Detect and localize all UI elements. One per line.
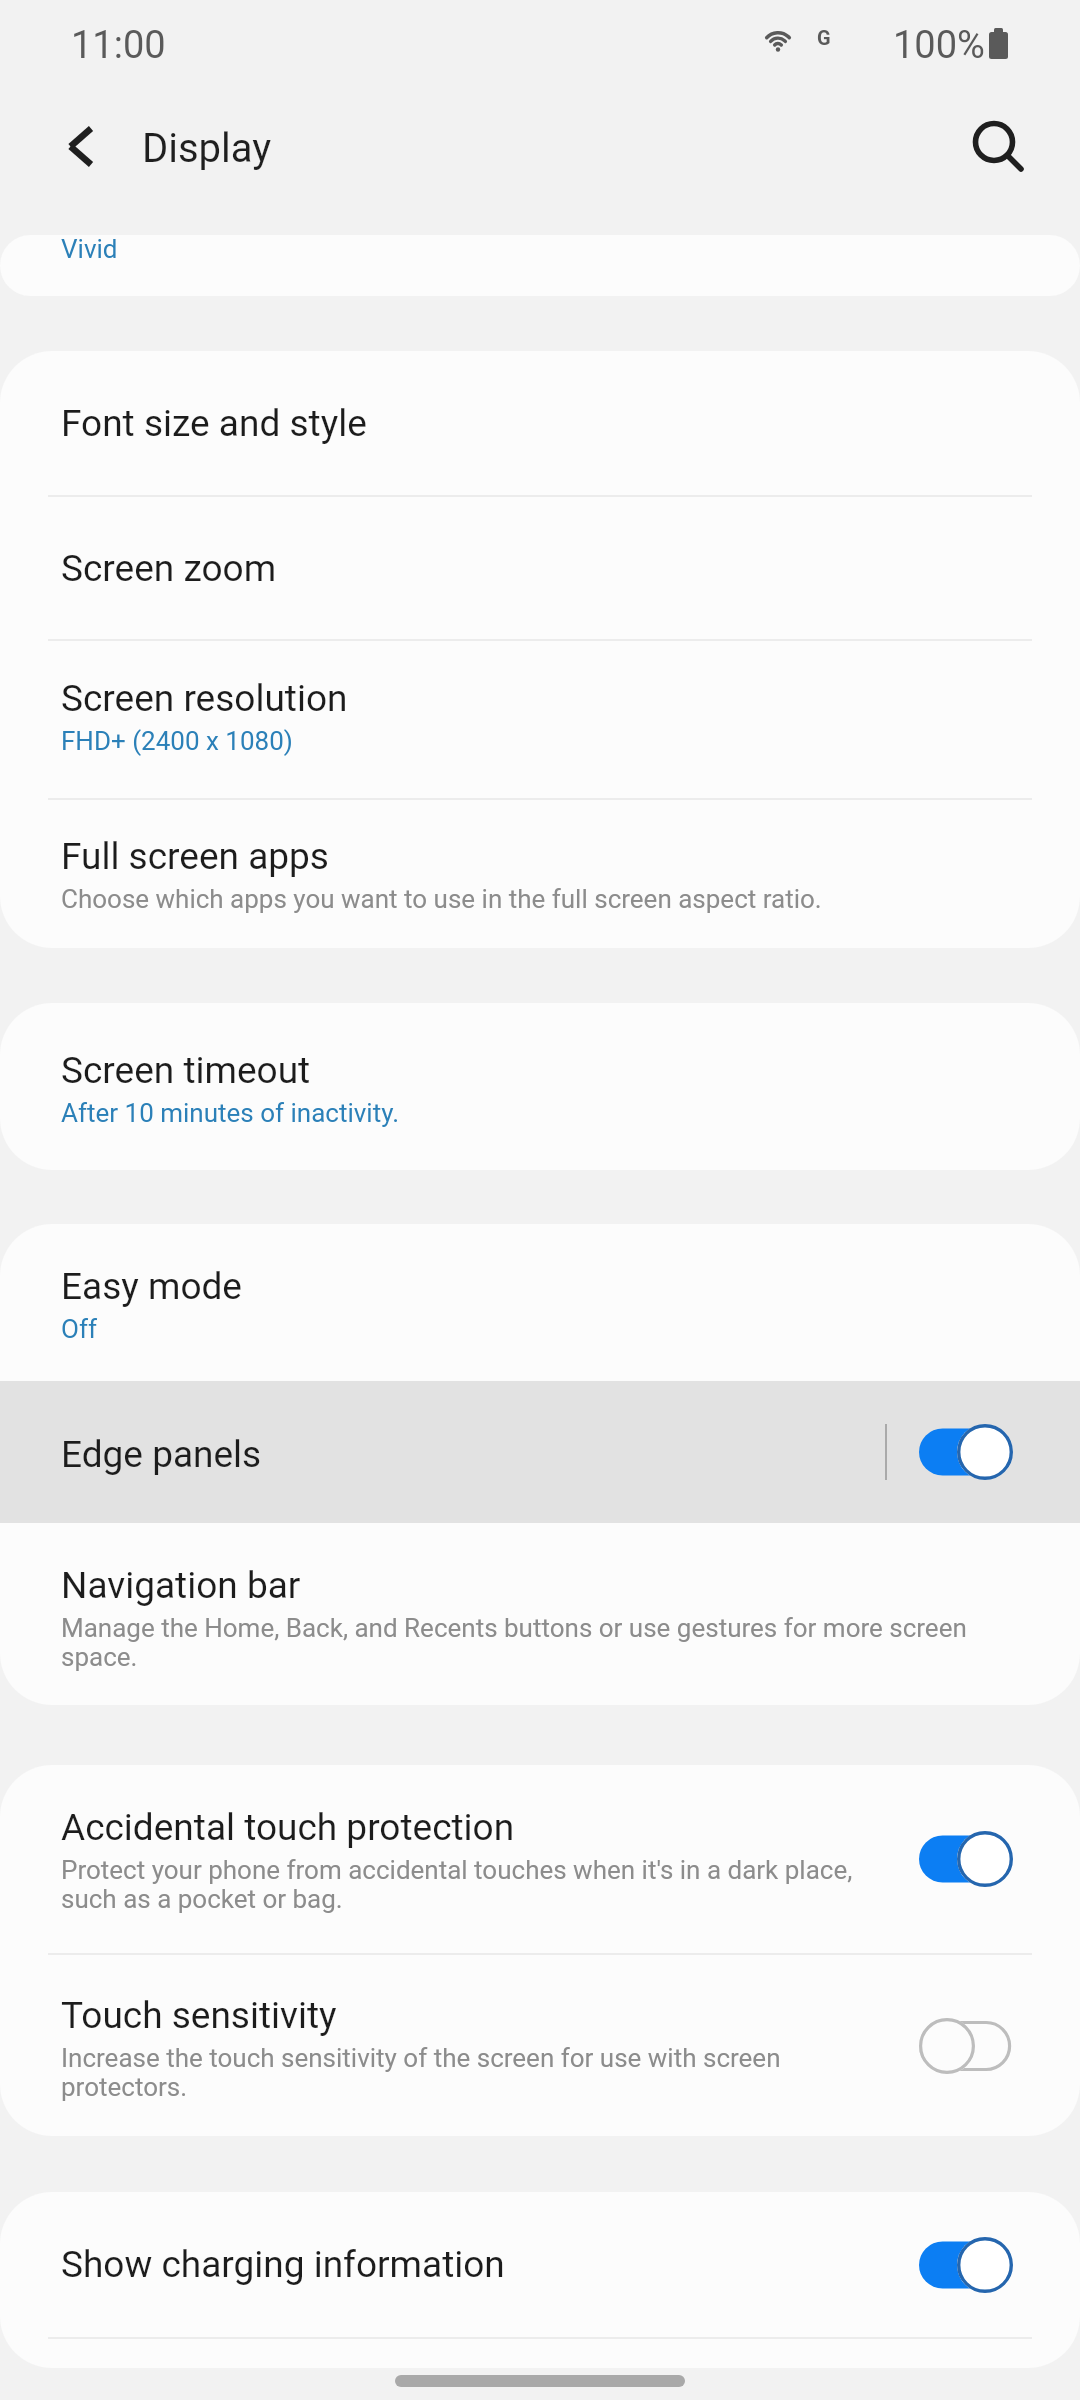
staticText: Vivid bbox=[61, 235, 118, 264]
button[interactable]: Screen zoom bbox=[0, 497, 1080, 639]
staticText: Choose which apps you want to use in the… bbox=[61, 884, 822, 914]
button[interactable]: Easy mode bbox=[0, 1224, 1080, 1381]
staticText: After 10 minutes of inactivity. bbox=[61, 1098, 399, 1128]
staticText: FHD+ (2400 x 1080) bbox=[61, 726, 293, 756]
staticText: Increase the touch sensitivity of the sc… bbox=[61, 2043, 889, 2102]
staticText: Navigation bar bbox=[61, 1564, 301, 1607]
button[interactable]: Screen resolution bbox=[0, 641, 1080, 798]
button[interactable]: Font size and style bbox=[0, 351, 1080, 495]
staticText: Edge panels bbox=[61, 1433, 262, 1476]
button[interactable]: Off bbox=[919, 2015, 1013, 2077]
button[interactable]: Full screen apps bbox=[0, 800, 1080, 948]
staticText: Font size and style bbox=[61, 402, 367, 445]
staticText: Protect your phone from accidental touch… bbox=[61, 1855, 889, 1914]
staticText: 11:00 bbox=[71, 23, 166, 68]
button[interactable]: Navigation bar bbox=[0, 1523, 1080, 1705]
button[interactable]: Back bbox=[40, 117, 120, 197]
staticText: Full screen apps bbox=[61, 835, 329, 878]
staticText: Show charging information bbox=[61, 2243, 505, 2286]
staticText: Touch sensitivity bbox=[61, 1994, 337, 2037]
staticText: Screen resolution bbox=[61, 677, 348, 720]
button[interactable]: Touch sensitivity bbox=[0, 1955, 1080, 2136]
button[interactable]: Show charging information bbox=[0, 2192, 1080, 2337]
staticText: Easy mode bbox=[61, 1265, 242, 1308]
staticText: Accidental touch protection bbox=[61, 1806, 515, 1849]
button[interactable]: Accidental touch protection bbox=[0, 1765, 1080, 1953]
button[interactable]: Screen timeout bbox=[0, 1003, 1080, 1170]
button[interactable]: On bbox=[919, 1828, 1013, 1890]
staticText: Off bbox=[61, 1314, 97, 1344]
staticText: Screen zoom bbox=[61, 547, 277, 590]
button[interactable]: Edge panels bbox=[0, 1381, 1080, 1523]
staticText: Display bbox=[142, 125, 272, 172]
button[interactable]: On bbox=[919, 1421, 1013, 1483]
staticText: Manage the Home, Back, and Recents butto… bbox=[61, 1613, 1013, 1672]
staticText: Screen timeout bbox=[61, 1049, 311, 1092]
button[interactable]: Search bbox=[960, 116, 1040, 196]
staticText: 100% bbox=[893, 23, 985, 68]
button[interactable]: On bbox=[919, 2234, 1013, 2296]
staticText: G bbox=[817, 26, 831, 49]
